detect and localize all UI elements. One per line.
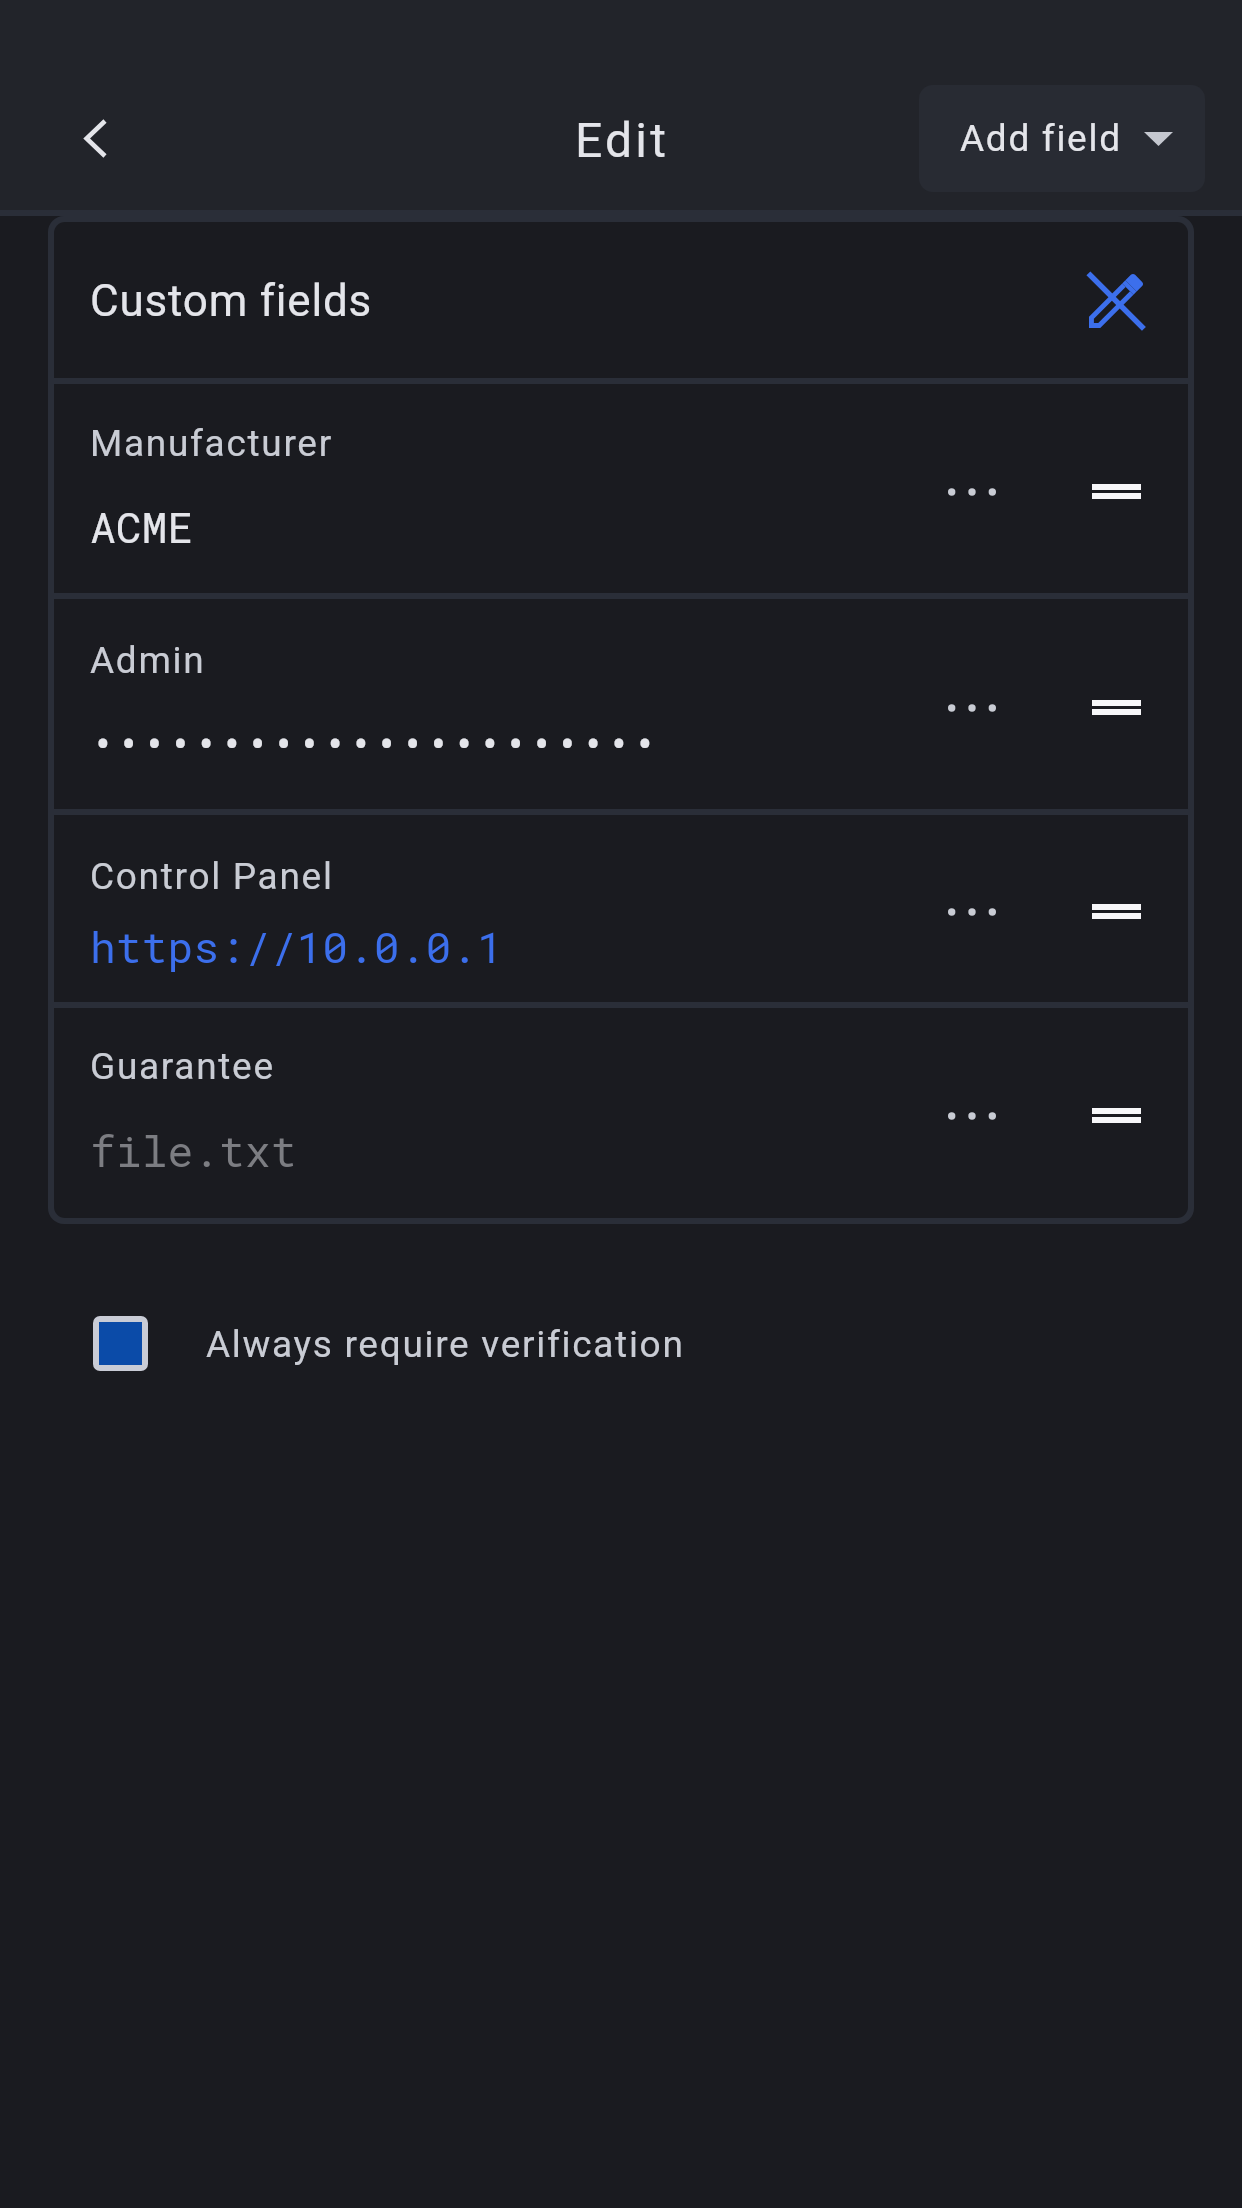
button[interactable]: More options <box>903 663 993 753</box>
staticText: Manufacturer <box>90 422 333 465</box>
staticText: Add field <box>960 117 1122 160</box>
staticText: •••••••••••••••••••••• <box>90 714 658 771</box>
button[interactable]: More options <box>903 867 993 957</box>
staticText: https://10.0.0.1 <box>90 918 503 975</box>
staticText: Edit <box>575 112 670 168</box>
button[interactable] <box>54 599 1188 809</box>
button[interactable]: Back <box>50 93 140 183</box>
button[interactable] <box>54 1008 1188 1218</box>
button[interactable]: Reorder field <box>1070 447 1162 539</box>
button[interactable]: Stop editing custom fields <box>1070 255 1162 347</box>
staticText: ACME <box>90 498 194 555</box>
staticText: Guarantee <box>90 1045 275 1088</box>
button[interactable]: Always require verification <box>70 1300 730 1390</box>
button[interactable] <box>54 384 1188 593</box>
button[interactable]: Reorder field <box>1070 867 1162 959</box>
button[interactable]: Add field <box>919 85 1205 192</box>
button[interactable] <box>54 222 1188 378</box>
staticText: Admin <box>90 639 206 682</box>
button[interactable]: Reorder field <box>1070 1071 1162 1163</box>
staticText: Always require verification <box>206 1323 685 1366</box>
button[interactable] <box>54 815 1188 1002</box>
button[interactable]: Reorder field <box>1070 663 1162 755</box>
staticText: Custom fields <box>90 275 373 327</box>
staticText: Control Panel <box>90 855 334 898</box>
staticText: file.txt <box>90 1122 297 1179</box>
button[interactable]: More options <box>903 447 993 537</box>
button[interactable]: More options <box>903 1071 993 1161</box>
